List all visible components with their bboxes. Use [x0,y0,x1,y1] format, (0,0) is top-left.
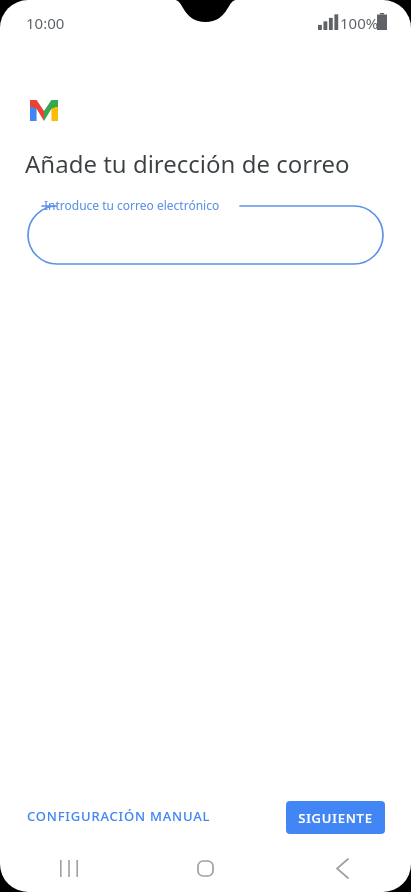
staticText: SIGUIENTE [298,809,373,827]
button[interactable]: SIGUIENTE [286,801,385,834]
staticText: Añade tu dirección de correo [25,147,350,180]
button[interactable]: CONFIGURACIÓN MANUAL [16,798,222,834]
button[interactable]: Recent apps [0,844,137,892]
staticText: CONFIGURACIÓN MANUAL [27,807,211,825]
staticText: 10:00 [26,13,65,33]
staticText: Introduce tu correo electrónico [44,197,220,213]
button[interactable]: Introduce tu correo electrónico [28,196,383,264]
button[interactable]: Home [137,844,274,892]
button[interactable]: Back [274,844,411,892]
staticText: 100% [340,13,379,33]
